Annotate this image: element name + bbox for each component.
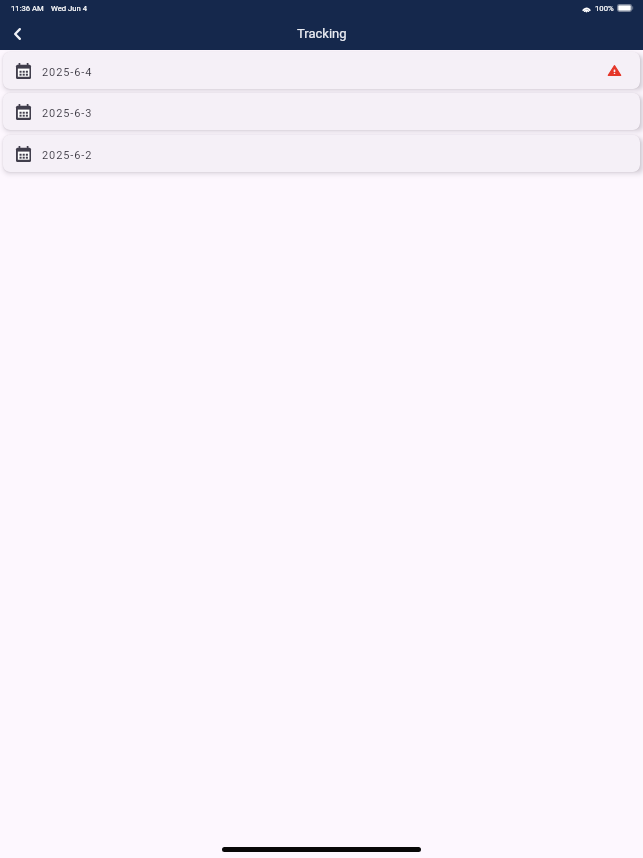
button[interactable]: Tracking entry 2025-6-4 [3,52,640,89]
staticText: 2025-6-2 [42,149,93,162]
staticText: 11:36 AM [11,4,44,13]
staticText: Wed Jun 4 [51,4,87,13]
staticText: Tracking [297,26,347,41]
staticText: 100% [595,4,614,13]
button[interactable]: Back [0,17,35,50]
staticText: 2025-6-3 [42,107,93,120]
button[interactable]: Tracking entry 2025-6-2 [3,135,640,172]
button[interactable]: Tracking entry 2025-6-3 [3,93,640,130]
staticText: 2025-6-4 [42,66,93,79]
